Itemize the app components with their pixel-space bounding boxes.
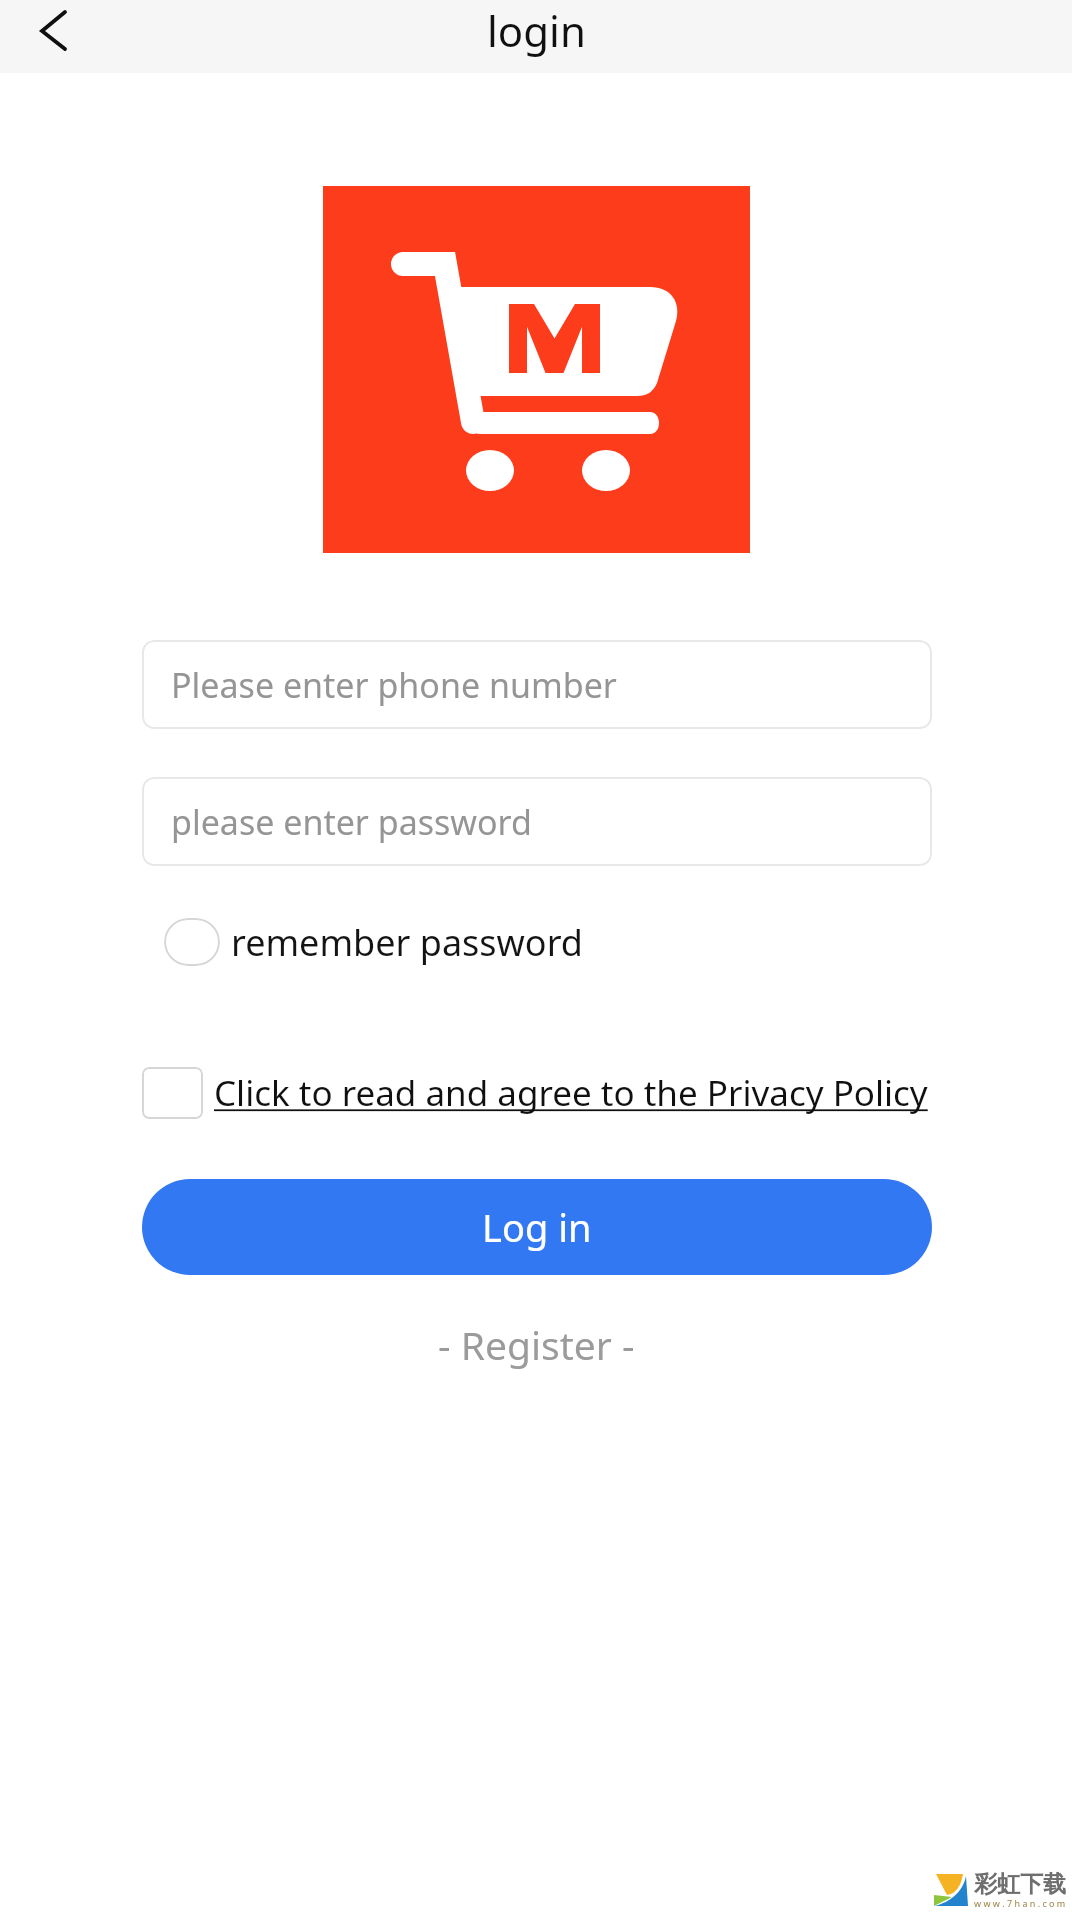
staticText: remember password [231, 918, 583, 967]
button[interactable]: - Register - [424, 1312, 649, 1377]
staticText: Click to read and agree to the Privacy P… [214, 1069, 928, 1117]
staticText: w w w . 7 h a n . c o m [974, 1897, 1066, 1909]
button[interactable]: Log in [142, 1179, 932, 1275]
staticText: - Register - [438, 1318, 635, 1371]
button[interactable]: Click to read and agree to the Privacy P… [142, 1066, 928, 1120]
button[interactable]: remember password [164, 916, 583, 968]
staticText: please enter password [171, 799, 532, 845]
staticText: Log in [482, 1201, 592, 1253]
staticText: 彩虹下载 [974, 1870, 1066, 1899]
staticText: Please enter phone number [171, 662, 617, 708]
button[interactable]: Please enter phone number [142, 640, 932, 729]
button[interactable]: Back [0, 0, 100, 73]
staticText: login [487, 2, 586, 59]
button[interactable]: please enter password [142, 777, 932, 866]
